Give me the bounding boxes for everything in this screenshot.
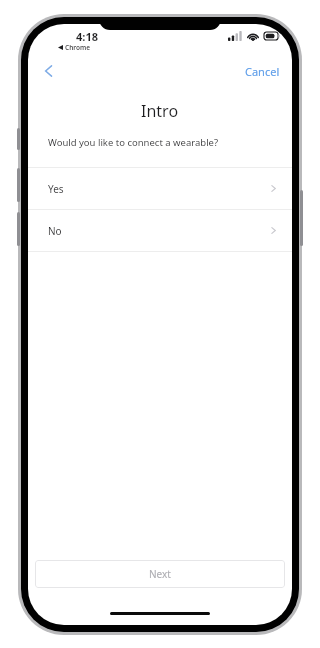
button[interactable]: Yes — [28, 168, 292, 209]
button[interactable]: Cancel — [233, 59, 292, 84]
button[interactable]: Back — [34, 56, 64, 86]
staticText: Would you like to connect a wearable? — [48, 136, 219, 149]
staticText: Yes — [48, 182, 64, 196]
button[interactable]: No — [28, 210, 292, 251]
staticText: Chrome — [65, 43, 91, 52]
button[interactable]: Next — [35, 560, 285, 588]
staticText: 4:18 — [76, 29, 98, 44]
staticText: No — [48, 224, 62, 238]
staticText: Next — [149, 567, 171, 581]
staticText: Cancel — [245, 64, 280, 79]
staticText: Intro — [141, 100, 179, 122]
